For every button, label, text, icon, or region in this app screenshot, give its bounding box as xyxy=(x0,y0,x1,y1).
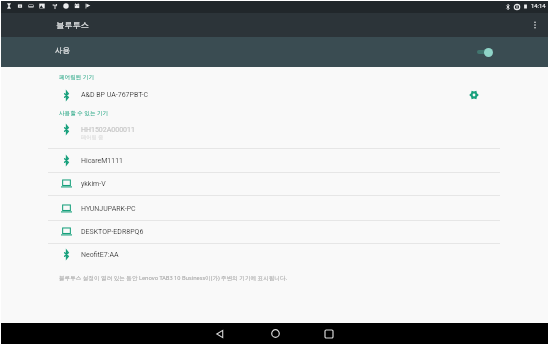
staticText: 블루투스 xyxy=(56,20,89,30)
button[interactable]: A&D BP UA-767PBT-C xyxy=(0,89,550,101)
staticText: 페어링된 기기 xyxy=(59,73,95,81)
staticText: 사용 xyxy=(55,46,71,56)
button[interactable]: DESKTOP-EDR8PQ6 xyxy=(0,220,550,244)
button[interactable]: HYUNJUPARK-PC xyxy=(0,197,550,221)
button[interactable]: HicareM1111 xyxy=(0,149,550,173)
staticText: HYUNJUPARK-PC xyxy=(81,205,136,213)
button[interactable]: Home xyxy=(252,322,298,345)
button[interactable]: Bluetooth on/off xyxy=(475,45,497,59)
staticText: NeofitE7:AA xyxy=(81,251,119,259)
staticText: HH1502A000011 xyxy=(81,126,135,134)
staticText: 사용할 수 있는 기기 xyxy=(59,109,109,117)
button[interactable]: More options xyxy=(526,16,544,34)
staticText: ykkim-V xyxy=(81,180,106,188)
button[interactable]: ykkim-V xyxy=(0,172,550,196)
button[interactable]: Device settings xyxy=(464,89,484,101)
staticText: 14:14 xyxy=(531,3,546,10)
button[interactable]: HH1502A000011 xyxy=(0,122,550,149)
staticText: 페어링 중 xyxy=(81,133,104,140)
button[interactable]: Recent apps xyxy=(306,322,352,345)
staticText: 블루투스 설정이 열려 있는 동안 Lenovo TAB3 10 Busines… xyxy=(59,274,288,282)
button[interactable]: NeofitE7:AA xyxy=(0,243,550,267)
button[interactable]: 사용 xyxy=(0,37,550,67)
staticText: DESKTOP-EDR8PQ6 xyxy=(81,228,144,236)
staticText: HicareM1111 xyxy=(81,157,124,165)
button[interactable]: Back xyxy=(197,322,243,345)
staticText: A&D BP UA-767PBT-C xyxy=(81,91,149,99)
